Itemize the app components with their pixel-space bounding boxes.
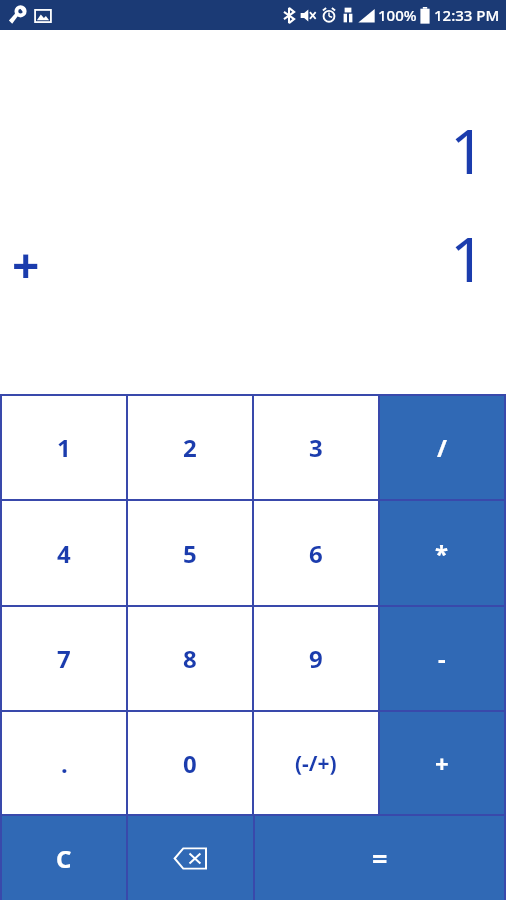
staticText: 0 — [183, 747, 197, 780]
button[interactable]: 1 — [2, 396, 126, 499]
staticText: 6 — [309, 537, 323, 570]
staticText: 5 — [183, 537, 197, 570]
staticText: 1 — [450, 216, 486, 300]
button[interactable]: 4 — [2, 501, 126, 605]
button[interactable]: (-/+) — [254, 712, 378, 814]
staticText: 100% — [378, 5, 417, 25]
staticText: 2 — [183, 431, 197, 464]
staticText: 12:33 PM — [434, 5, 500, 25]
staticText: . — [61, 747, 68, 780]
staticText: - — [438, 642, 446, 675]
button[interactable]: 5 — [128, 501, 252, 605]
button[interactable]: 9 — [254, 607, 378, 710]
staticText: * — [435, 537, 449, 570]
button[interactable]: Backspace — [128, 816, 253, 900]
staticText: = — [372, 840, 388, 877]
button[interactable]: / — [380, 396, 504, 499]
staticText: 1 — [57, 431, 71, 464]
button[interactable]: 7 — [2, 607, 126, 710]
button[interactable]: * — [380, 501, 504, 605]
button[interactable]: . — [2, 712, 126, 814]
button[interactable]: 6 — [254, 501, 378, 605]
staticText: 8 — [183, 642, 197, 675]
staticText: C — [56, 842, 72, 875]
button[interactable]: C — [2, 816, 126, 900]
staticText: 4 — [57, 537, 71, 570]
button[interactable]: 2 — [128, 396, 252, 499]
button[interactable]: 3 — [254, 396, 378, 499]
staticText: 3 — [309, 431, 323, 464]
button[interactable]: + — [380, 712, 504, 814]
staticText: / — [437, 431, 447, 464]
staticText: 9 — [309, 642, 323, 675]
button[interactable]: 8 — [128, 607, 252, 710]
staticText: 1 — [450, 108, 486, 192]
button[interactable]: = — [255, 816, 504, 900]
staticText: + — [12, 232, 40, 297]
button[interactable]: 0 — [128, 712, 252, 814]
staticText: (-/+) — [295, 749, 337, 778]
staticText: 7 — [57, 642, 71, 675]
staticText: + — [435, 747, 449, 780]
button[interactable]: - — [380, 607, 504, 710]
